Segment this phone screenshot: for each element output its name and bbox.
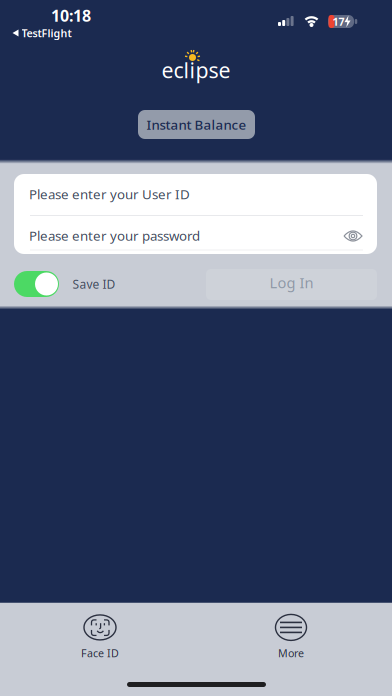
staticText: More	[278, 646, 304, 660]
button[interactable]: Please enter your User ID	[29, 179, 362, 209]
button[interactable]: Please enter your password	[29, 220, 362, 250]
button[interactable]: Save ID toggle	[14, 271, 59, 297]
button[interactable]: More	[246, 613, 336, 661]
staticText: eclipse	[161, 56, 230, 84]
staticText: Please enter your User ID	[29, 185, 190, 203]
staticText: TestFlight	[21, 26, 71, 40]
staticText: 17	[332, 14, 344, 29]
button[interactable]: Log In	[206, 269, 377, 300]
staticText: Please enter your password	[29, 227, 200, 244]
staticText: Save ID	[72, 276, 115, 292]
button[interactable]: Back to TestFlight	[4, 27, 80, 39]
staticText: Instant Balance	[146, 116, 246, 133]
button[interactable]: Show password	[341, 227, 365, 245]
button[interactable]: Face ID	[55, 613, 145, 661]
button[interactable]: Instant Balance	[138, 110, 255, 139]
staticText: 10:18	[51, 5, 91, 26]
staticText: Face ID	[81, 646, 119, 660]
staticText: Log In	[269, 273, 313, 292]
